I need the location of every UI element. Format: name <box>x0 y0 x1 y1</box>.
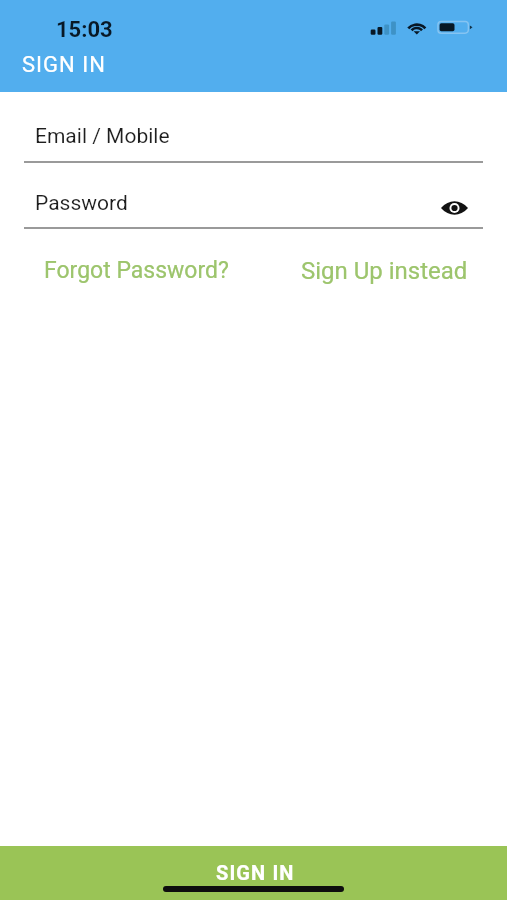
button[interactable]: Email / Mobile <box>24 112 483 163</box>
staticText: Sign Up instead <box>301 257 468 285</box>
button[interactable]: Password <box>24 178 483 229</box>
button[interactable]: Sign Up instead <box>293 251 483 291</box>
staticText: 15:03 <box>56 17 113 43</box>
staticText: Password <box>35 191 128 216</box>
staticText: SIGN IN <box>22 52 106 78</box>
staticText: Forgot Password? <box>44 257 229 284</box>
staticText: SIGN IN <box>216 861 295 884</box>
button[interactable]: SIGN IN <box>0 846 507 900</box>
button[interactable]: Forgot Password? <box>24 251 249 290</box>
button[interactable]: Show password <box>436 190 472 226</box>
staticText: Email / Mobile <box>35 124 170 149</box>
button[interactable]: SIGN IN <box>9 48 119 82</box>
